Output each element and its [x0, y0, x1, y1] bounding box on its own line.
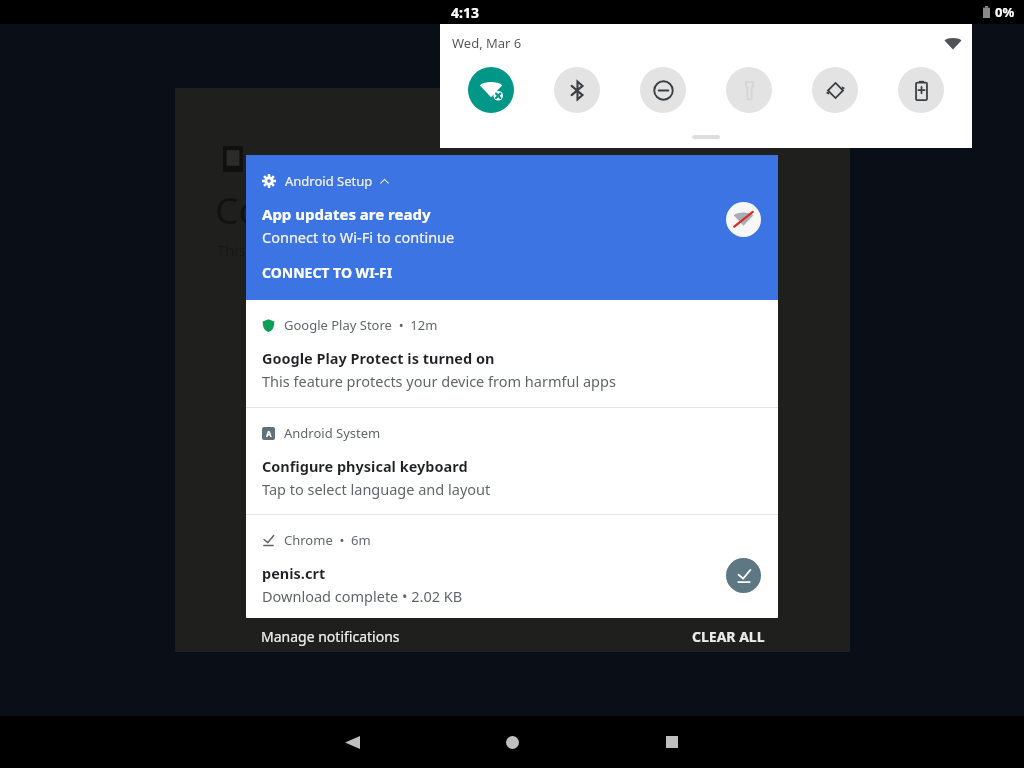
- button[interactable]: Android Setup: [246, 155, 778, 300]
- button[interactable]: Open download: [726, 558, 761, 593]
- button[interactable]: Manage notifications: [175, 623, 408, 650]
- button[interactable]: Google Play Store • 12m: [246, 300, 778, 407]
- staticText: Android System: [284, 424, 381, 442]
- button[interactable]: No Wi-Fi: [726, 202, 761, 237]
- button[interactable]: Auto rotate: [812, 67, 858, 113]
- staticText: Download complete • 2.02 KB: [262, 586, 463, 606]
- button[interactable]: Bluetooth: [554, 67, 600, 113]
- staticText: Wed, Mar 6: [452, 34, 522, 52]
- staticText: Android Setup: [285, 172, 373, 190]
- staticText: Google Play Protect is turned on: [262, 348, 495, 368]
- staticText: Manage notifications: [261, 627, 400, 646]
- staticText: penis.crt: [262, 563, 326, 583]
- staticText: CONNECT TO WI-FI: [262, 263, 393, 282]
- button[interactable]: Chrome • 6m: [246, 515, 778, 618]
- staticText: Google Play Store • 12m: [284, 316, 438, 334]
- button[interactable]: Expand quick settings: [692, 135, 720, 139]
- staticText: App updates are ready: [262, 204, 431, 224]
- button[interactable]: Internet: [468, 67, 514, 113]
- button[interactable]: Recent apps: [650, 720, 694, 764]
- button[interactable]: Battery Saver: [898, 67, 944, 113]
- staticText: Connect to Wi-Fi to continue: [262, 227, 455, 247]
- button[interactable]: Flashlight: [726, 67, 772, 113]
- staticText: CLEAR ALL: [692, 627, 765, 646]
- staticText: A: [266, 428, 272, 439]
- button[interactable]: Do Not Disturb: [640, 67, 686, 113]
- button[interactable]: Back: [330, 720, 374, 764]
- button[interactable]: Wi-Fi disconnected: [944, 35, 962, 53]
- button[interactable]: CONNECT TO WI-FI: [262, 263, 393, 282]
- button[interactable]: CLEAR ALL: [692, 623, 850, 650]
- staticText: Co: [215, 184, 261, 234]
- staticText: 0%: [995, 3, 1015, 21]
- button[interactable]: A: [246, 408, 778, 514]
- staticText: Chrome • 6m: [284, 531, 371, 549]
- staticText: This feature protects your device from h…: [262, 371, 616, 391]
- staticText: Configure physical keyboard: [262, 456, 468, 476]
- button[interactable]: Home: [490, 720, 534, 764]
- staticText: Tap to select language and layout: [262, 479, 491, 499]
- staticText: 4:13: [451, 3, 479, 22]
